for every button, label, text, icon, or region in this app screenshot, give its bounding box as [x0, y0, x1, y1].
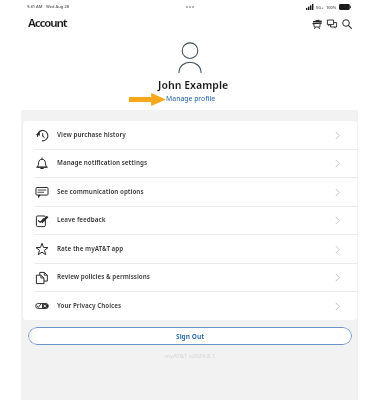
staticText: View purchase history [57, 130, 126, 139]
button[interactable]: View purchase history [23, 121, 357, 149]
staticText: 5G+ [316, 5, 324, 10]
staticText: Account [28, 15, 67, 31]
staticText: Rate the myAT&T app [57, 244, 124, 253]
button[interactable]: Leave feedback [23, 207, 357, 234]
staticText: 100% [326, 5, 337, 10]
button[interactable]: Review policies & permissions [23, 264, 357, 291]
staticText: Wed Aug 28 [46, 4, 69, 9]
button[interactable]: Manage notification settings [23, 150, 357, 177]
button[interactable]: Search [340, 17, 354, 31]
staticText: John Example [158, 78, 229, 92]
staticText: myAT&T v2024.8.1 [0, 352, 380, 360]
staticText: Sign Out [176, 332, 205, 341]
staticText: Manage profile [166, 94, 216, 103]
button[interactable]: Your Privacy Choices [23, 292, 357, 320]
staticText: Your Privacy Choices [57, 301, 122, 310]
button[interactable]: Manage profile [166, 94, 216, 103]
staticText: Manage notification settings [57, 158, 148, 167]
staticText: See communication options [57, 187, 144, 196]
button[interactable]: See communication options [23, 178, 357, 206]
staticText: Leave feedback [57, 215, 106, 224]
button[interactable]: Messages [325, 17, 339, 31]
staticText: Review policies & permissions [57, 272, 150, 281]
button[interactable]: Sign Out [28, 327, 352, 345]
button[interactable]: Cart [310, 17, 324, 31]
button[interactable]: Rate the myAT&T app [23, 235, 357, 263]
staticText: 9:41 AM [27, 4, 43, 9]
